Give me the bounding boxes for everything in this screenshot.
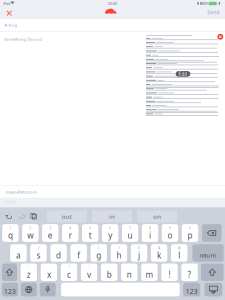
staticText: 0 [189,226,191,230]
button[interactable]: t [82,224,98,242]
staticText: 7 [129,226,131,230]
staticText: iPad [3,1,10,6]
staticText: & [158,246,160,250]
staticText: ' [109,265,110,270]
button[interactable]: x [41,263,57,281]
button[interactable]: i [142,224,158,242]
button[interactable]: q [2,224,19,242]
staticText: in [109,212,115,221]
staticText: 1 [9,226,11,230]
staticText: ! [89,265,90,270]
button[interactable]: Hide keyboard [204,283,222,296]
button[interactable]: ? [181,263,198,281]
staticText: Edit [178,71,187,77]
button[interactable]: return [192,244,224,262]
staticText: out [62,212,72,221]
button[interactable]: p [182,224,198,242]
button[interactable]: g [91,244,107,262]
staticText: / [38,246,39,250]
staticText: a [16,250,21,261]
button[interactable]: in [92,210,132,222]
staticText: ( [98,246,99,250]
button[interactable]: f [70,244,87,262]
button[interactable]: k [151,244,167,262]
staticText: , [169,265,170,270]
button[interactable]: Close [1,7,17,19]
button[interactable]: Shift [2,263,17,281]
button[interactable]: Undo [3,210,15,221]
button[interactable]: e [42,224,58,242]
staticText: r [69,230,72,241]
button[interactable]: o [162,224,178,242]
staticText: s [36,250,40,261]
button[interactable]: n [121,263,137,281]
button[interactable]: u [122,224,138,242]
button[interactable]: Paste [28,210,40,221]
button[interactable]: on [137,210,177,222]
staticText: q [8,230,13,241]
staticText: j [138,250,140,261]
staticText: " [28,265,29,270]
staticText: @ [178,246,181,250]
staticText: i [149,230,151,241]
staticText: 88% [201,1,208,6]
staticText: x [47,269,51,280]
button[interactable]: Shift [201,263,224,281]
button[interactable]: s [30,244,47,262]
staticText: , [129,265,130,270]
staticText: : [58,246,59,250]
staticText: 4 [69,226,71,230]
staticText: y [108,230,112,241]
button[interactable]: m [141,263,158,281]
staticText: n [127,269,132,280]
staticText: b [107,269,112,280]
button[interactable]: c [61,263,77,281]
staticText: 8 [149,226,151,230]
button[interactable]: j [131,244,147,262]
staticText: z [27,269,31,280]
button[interactable]: Redo [16,210,28,221]
button[interactable]: d [50,244,67,262]
staticText: h [116,250,121,261]
button[interactable]: a [10,244,27,262]
staticText: 2 [29,226,31,230]
staticText: t [89,230,92,241]
staticText: w [27,230,33,241]
button[interactable]: Edit [176,71,190,77]
button[interactable]: v [81,263,97,281]
button[interactable]: ! [161,263,178,281]
staticText: ? [68,265,69,270]
staticText: Send [207,9,219,16]
button[interactable]: out [47,210,87,222]
button[interactable]: z [21,263,37,281]
staticText: c [67,269,71,280]
button[interactable]: Remove attachment [217,34,223,40]
button[interactable]: l [171,244,187,262]
staticText: ? [188,269,192,280]
button[interactable]: Delete [202,224,222,242]
button[interactable]: h [111,244,127,262]
button[interactable]: r [62,224,78,242]
button[interactable]: y [102,224,118,242]
staticText: o [167,230,172,241]
button[interactable]: Emoji [21,283,37,296]
staticText: ! [168,269,170,280]
staticText: on [153,212,161,221]
button[interactable]: b [101,263,117,281]
staticText: dejan@test.com [6,189,37,195]
button[interactable]: Dictate [40,283,56,296]
staticText: 9 [169,226,171,230]
staticText: 123 [186,287,198,296]
button[interactable]: 123 [2,283,18,296]
button[interactable]: 123 [183,283,200,296]
staticText: . [149,265,150,270]
staticText: 23:00 [108,1,117,6]
staticText: 6 [109,226,111,230]
staticText: l [178,250,180,261]
staticText: g [96,250,101,261]
staticText: A bug [4,22,17,28]
button[interactable]: Send [202,7,224,18]
staticText: . [189,265,190,270]
button[interactable]: w [22,224,39,242]
